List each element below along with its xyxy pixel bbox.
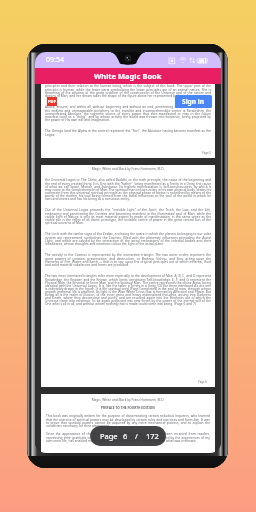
other: PDF file	[47, 97, 57, 106]
staticText: Since the appearance of the first editio…	[46, 432, 210, 443]
staticText: Above, around, and within all, without b…	[45, 105, 211, 122]
staticText: Sign in	[182, 97, 205, 106]
staticText: Magic, White and Black by Franz Hartmann…	[45, 167, 211, 171]
button[interactable]: Page	[90, 426, 166, 446]
staticText: Out of the Universal Logos proceeds the …	[45, 208, 211, 225]
staticText: PREFACE TO THE FOURTH EDITION	[46, 406, 210, 410]
staticText: The two inner interlaced triangles refer…	[45, 274, 211, 306]
button[interactable]: White Magic Book	[35, 68, 221, 84]
staticText: This book was originally written for the…	[46, 414, 210, 428]
staticText: White Magic Book	[94, 71, 162, 81]
staticText: Page 6	[198, 380, 207, 384]
staticText: Page 5	[202, 151, 211, 155]
staticText: Magic, White and Black by Franz Hartmann…	[46, 398, 210, 402]
staticText: 172	[146, 431, 159, 441]
staticText: 09:54	[46, 55, 64, 65]
staticText: PDF	[48, 99, 56, 105]
staticText: principles and their relation to the hum…	[45, 84, 211, 98]
staticText: Page	[100, 431, 118, 441]
staticText: 6	[123, 431, 128, 441]
staticText: The Omega (and the Alpha in the centre) …	[45, 129, 211, 137]
staticText: the Universal Logos or The Christ, also …	[45, 178, 211, 201]
staticText: The activity in the Cosmos is represente…	[45, 253, 211, 267]
staticText: The circle with the twelve signs of the …	[45, 232, 211, 246]
button[interactable]: Sign in	[175, 95, 212, 108]
staticText: /	[135, 431, 138, 441]
